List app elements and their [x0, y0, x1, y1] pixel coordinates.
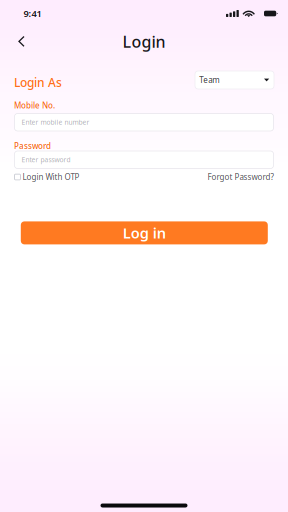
staticText: Login	[122, 31, 165, 52]
button[interactable]: Back	[9, 29, 34, 53]
button[interactable]: Login With OTP	[15, 172, 79, 181]
staticText: 9:41	[23, 7, 41, 20]
staticText: Log in	[123, 223, 166, 243]
staticText: Password	[14, 140, 51, 151]
staticText: Enter password	[21, 155, 70, 164]
button[interactable]: Team	[195, 71, 274, 89]
staticText: Mobile No.	[14, 100, 55, 111]
staticText: Enter mobile number	[21, 118, 89, 127]
staticText: Login With OTP	[22, 172, 79, 182]
button[interactable]: Log in	[21, 221, 268, 244]
staticText: Forgot Password?	[207, 172, 273, 182]
staticText: Login As	[14, 74, 62, 90]
staticText: Team	[199, 75, 219, 85]
button[interactable]: Forgot Password?	[207, 172, 273, 181]
